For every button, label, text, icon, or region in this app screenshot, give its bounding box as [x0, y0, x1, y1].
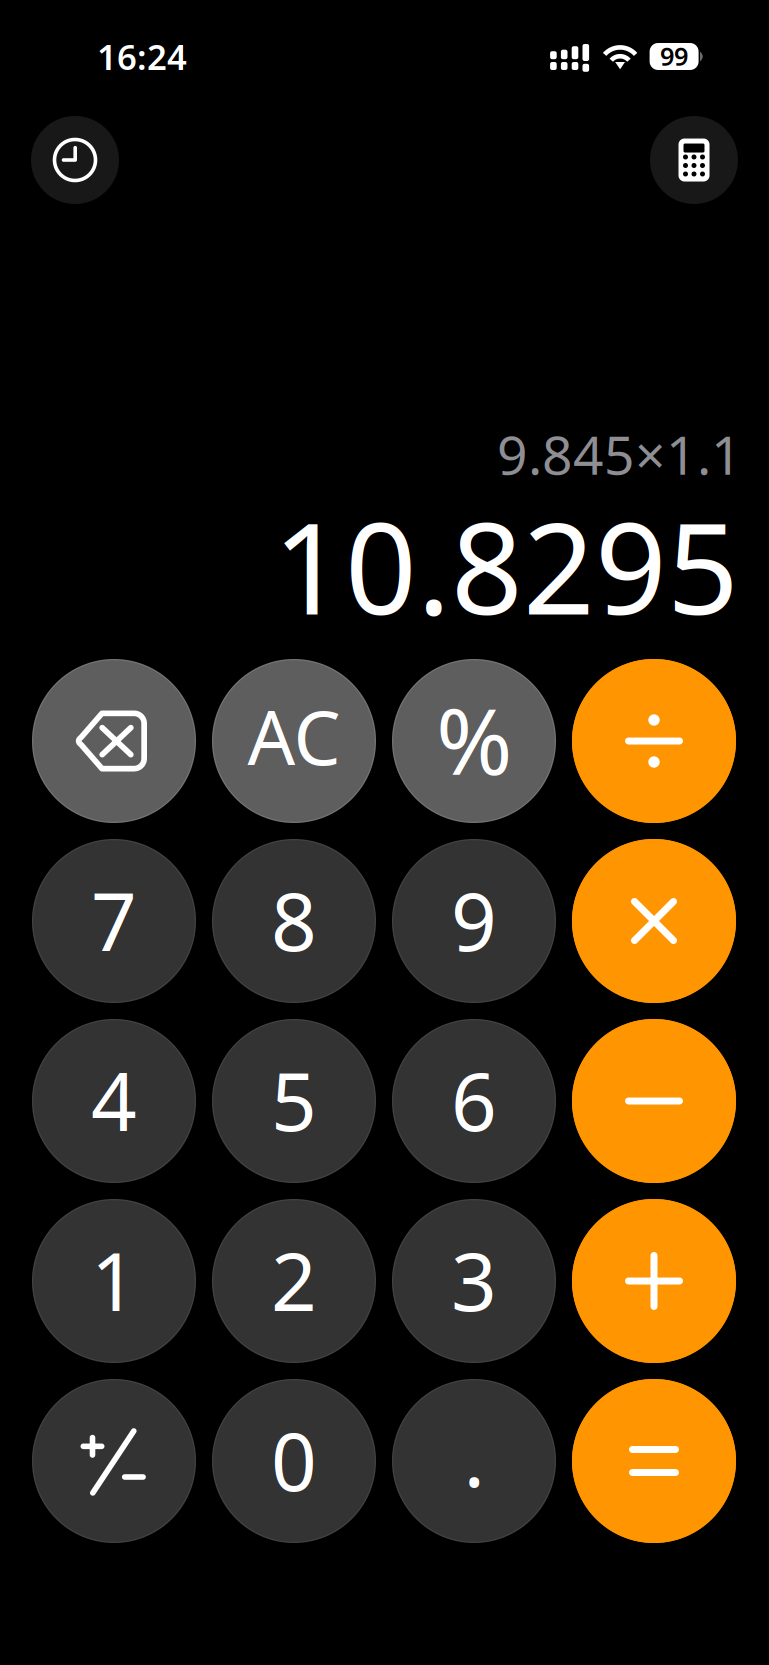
staticText: 10.8295: [273, 483, 739, 649]
staticText: 7: [91, 867, 137, 973]
button[interactable]: Add: [572, 1199, 736, 1363]
button[interactable]: All clear: [212, 659, 376, 823]
staticText: AC: [247, 686, 340, 786]
button[interactable]: 8: [212, 839, 376, 1003]
button[interactable]: 0: [212, 1379, 376, 1543]
button[interactable]: 4: [32, 1019, 196, 1183]
button[interactable]: 3: [392, 1199, 556, 1363]
staticText: 5: [271, 1047, 317, 1153]
button[interactable]: Percent: [392, 659, 556, 823]
button[interactable]: Equals: [572, 1379, 736, 1543]
button[interactable]: Multiply: [572, 839, 736, 1003]
button[interactable]: Delete: [32, 659, 196, 823]
staticText: 99: [660, 39, 688, 73]
staticText: %: [436, 678, 512, 800]
staticText: 0: [271, 1407, 317, 1513]
button[interactable]: 7: [32, 839, 196, 1003]
staticText: 8: [271, 867, 317, 973]
button[interactable]: 1: [32, 1199, 196, 1363]
staticText: 4: [91, 1047, 137, 1153]
button[interactable]: History: [31, 116, 119, 204]
button[interactable]: Calculator mode: [650, 116, 738, 204]
button[interactable]: Decimal point: [392, 1379, 556, 1543]
button[interactable]: 9: [392, 839, 556, 1003]
staticText: .: [463, 1403, 484, 1509]
staticText: 9.845×1.1: [497, 419, 742, 489]
staticText: 6: [451, 1047, 497, 1153]
button[interactable]: 2: [212, 1199, 376, 1363]
button[interactable]: Plus minus: [32, 1379, 196, 1543]
staticText: 3: [451, 1227, 497, 1333]
button[interactable]: Subtract: [572, 1019, 736, 1183]
staticText: 9: [451, 867, 497, 973]
staticText: 2: [271, 1227, 317, 1333]
button[interactable]: 5: [212, 1019, 376, 1183]
button[interactable]: Divide: [572, 659, 736, 823]
button[interactable]: 6: [392, 1019, 556, 1183]
staticText: 1: [91, 1227, 137, 1333]
staticText: 16:24: [97, 33, 187, 79]
